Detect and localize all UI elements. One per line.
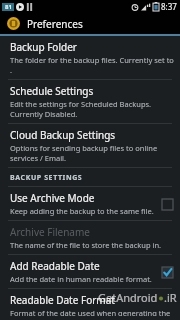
button[interactable]: Backup Folder	[0, 36, 180, 79]
staticText: Add the date in human readable format.	[10, 274, 152, 284]
button[interactable]: Cloud Backup Settings	[0, 124, 180, 167]
staticText: Preferences	[27, 17, 83, 31]
staticText: Backup Folder	[10, 40, 77, 54]
other: App icon	[7, 17, 20, 30]
staticText: BACKUP SETTINGS	[10, 173, 83, 183]
button[interactable]: Schedule Settings	[0, 80, 180, 123]
staticText: .iR	[164, 290, 177, 305]
staticText: Readable Date Format	[10, 293, 115, 307]
staticText: Format of the date used when generating …	[10, 308, 171, 316]
staticText: Use Archive Mode	[10, 191, 95, 205]
staticText: 81	[5, 3, 12, 11]
staticText: Add Readable Date	[10, 259, 100, 273]
button[interactable]: Add Readable Date	[0, 255, 180, 288]
button[interactable]: Readable Date Format	[0, 289, 180, 320]
staticText: Cloud Backup Settings	[10, 128, 116, 142]
staticText: GetAndroid	[98, 290, 158, 305]
staticText: The name of the file to store the backup…	[10, 240, 162, 250]
button[interactable]: App icon	[0, 13, 180, 34]
staticText: Schedule Settings	[10, 84, 94, 98]
staticText: Options for sending backup files to onli…	[10, 143, 158, 163]
button[interactable]: Use Archive Mode	[0, 187, 180, 220]
staticText: Keep adding the backup to the same file.	[10, 206, 154, 216]
button[interactable]: Enabled checkbox	[160, 265, 174, 279]
staticText: 8:37	[161, 1, 177, 12]
button[interactable]: Archive Filename	[0, 221, 180, 254]
button[interactable]: Disabled checkbox	[160, 197, 174, 211]
staticText: The folder for the backup files. Current…	[10, 55, 174, 75]
staticText: Edit the settings for Scheduled Backups.…	[10, 99, 152, 119]
staticText: Archive Filename	[10, 225, 90, 239]
